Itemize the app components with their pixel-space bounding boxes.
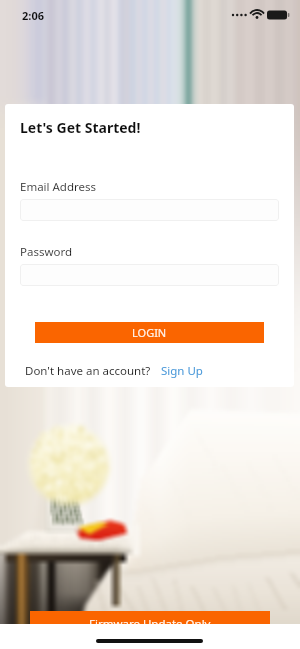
button[interactable]: Firmware Update Only	[30, 611, 270, 637]
button[interactable]	[20, 199, 279, 221]
other: Status icons	[232, 9, 282, 21]
staticText: LOGIN	[132, 325, 167, 340]
staticText: 2:06	[22, 8, 44, 23]
button[interactable]	[20, 264, 279, 286]
staticText: Password	[20, 244, 73, 260]
staticText: Firmware Update Only	[89, 616, 211, 632]
staticText: Don't have an account?	[25, 363, 151, 379]
staticText: Sign Up	[161, 363, 203, 379]
button[interactable]: LOGIN	[35, 322, 264, 343]
staticText: Email Address	[20, 179, 97, 195]
button[interactable]: Sign Up	[161, 363, 203, 379]
staticText: Let's Get Started!	[20, 118, 141, 137]
